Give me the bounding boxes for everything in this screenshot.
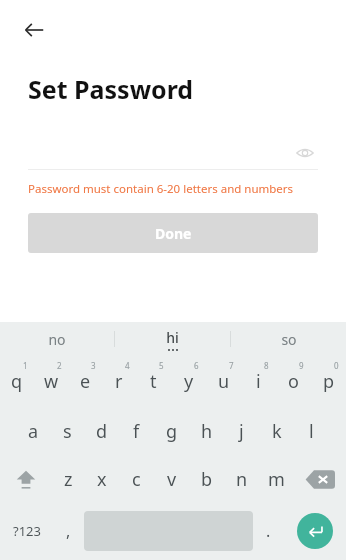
staticText: n <box>236 467 248 492</box>
button[interactable]: v <box>154 456 189 502</box>
staticText: ?123 <box>13 522 41 540</box>
staticText: 2 <box>57 360 62 371</box>
button[interactable]: Done <box>28 213 318 253</box>
button[interactable]: e <box>68 356 102 406</box>
staticText: Done <box>155 224 192 243</box>
staticText: v <box>167 467 177 492</box>
staticText: b <box>201 467 213 492</box>
staticText: k <box>272 419 282 444</box>
staticText: g <box>166 419 178 444</box>
staticText: l <box>309 419 314 444</box>
button[interactable]: Enter <box>297 513 333 549</box>
staticText: e <box>80 369 91 394</box>
staticText: z <box>64 467 73 492</box>
button[interactable]: w <box>34 356 68 406</box>
button[interactable]: n <box>224 456 259 502</box>
staticText: 8 <box>264 360 269 371</box>
button[interactable]: q <box>0 356 34 406</box>
staticText: p <box>323 369 335 394</box>
button[interactable]: l <box>294 406 329 456</box>
staticText: so <box>281 330 297 349</box>
staticText: 0 <box>334 360 339 371</box>
staticText: c <box>132 467 141 492</box>
staticText: q <box>11 369 23 394</box>
button[interactable]: o <box>276 356 311 406</box>
button[interactable]: z <box>51 456 85 502</box>
button[interactable]: , <box>53 502 84 560</box>
staticText: a <box>28 419 39 444</box>
staticText: j <box>239 419 244 444</box>
button[interactable]: s <box>50 406 84 456</box>
staticText: 6 <box>194 360 199 371</box>
button[interactable]: g <box>154 406 189 456</box>
staticText: u <box>218 369 230 394</box>
button[interactable]: a <box>16 406 50 456</box>
button[interactable]: so <box>231 322 346 356</box>
staticText: 5 <box>159 360 164 371</box>
button[interactable]: hi <box>115 322 230 356</box>
button[interactable]: b <box>189 456 224 502</box>
staticText: 3 <box>91 360 96 371</box>
button[interactable]: Backspace <box>294 456 346 502</box>
staticText: . <box>266 520 271 542</box>
button[interactable]: y <box>171 356 206 406</box>
button[interactable]: no <box>0 322 114 356</box>
button[interactable]: j <box>224 406 259 456</box>
button[interactable]: k <box>259 406 294 456</box>
button[interactable]: c <box>119 456 154 502</box>
staticText: Set Password <box>28 72 194 106</box>
button[interactable]: Shift <box>0 456 51 502</box>
staticText: 7 <box>229 360 234 371</box>
staticText: r <box>115 369 123 394</box>
staticText: i <box>256 369 261 394</box>
button[interactable]: x <box>85 456 119 502</box>
staticText: x <box>97 467 107 492</box>
staticText: hi <box>166 328 179 347</box>
staticText: Password must contain 6-20 letters and n… <box>28 181 294 197</box>
staticText: 9 <box>299 360 304 371</box>
button[interactable]: t <box>136 356 171 406</box>
button[interactable]: u <box>206 356 241 406</box>
staticText: t <box>150 369 157 394</box>
staticText: d <box>96 419 108 444</box>
button[interactable]: i <box>241 356 276 406</box>
staticText: m <box>268 467 285 492</box>
staticText: , <box>66 520 71 542</box>
staticText: no <box>48 330 66 349</box>
staticText: f <box>133 419 140 444</box>
staticText: o <box>288 369 299 394</box>
button[interactable]: Show password <box>292 140 318 166</box>
button[interactable]: ?123 <box>0 502 53 560</box>
button[interactable]: Back <box>14 10 54 50</box>
button[interactable]: d <box>84 406 119 456</box>
staticText: y <box>184 369 194 394</box>
staticText: h <box>201 419 213 444</box>
button[interactable]: r <box>102 356 136 406</box>
staticText: 4 <box>125 360 130 371</box>
button[interactable]: . <box>253 502 284 560</box>
button[interactable]: f <box>119 406 154 456</box>
button[interactable]: h <box>189 406 224 456</box>
button[interactable]: p <box>311 356 346 406</box>
staticText: w <box>44 369 59 394</box>
staticText: s <box>63 419 72 444</box>
staticText: 1 <box>23 360 28 371</box>
button[interactable]: m <box>259 456 294 502</box>
